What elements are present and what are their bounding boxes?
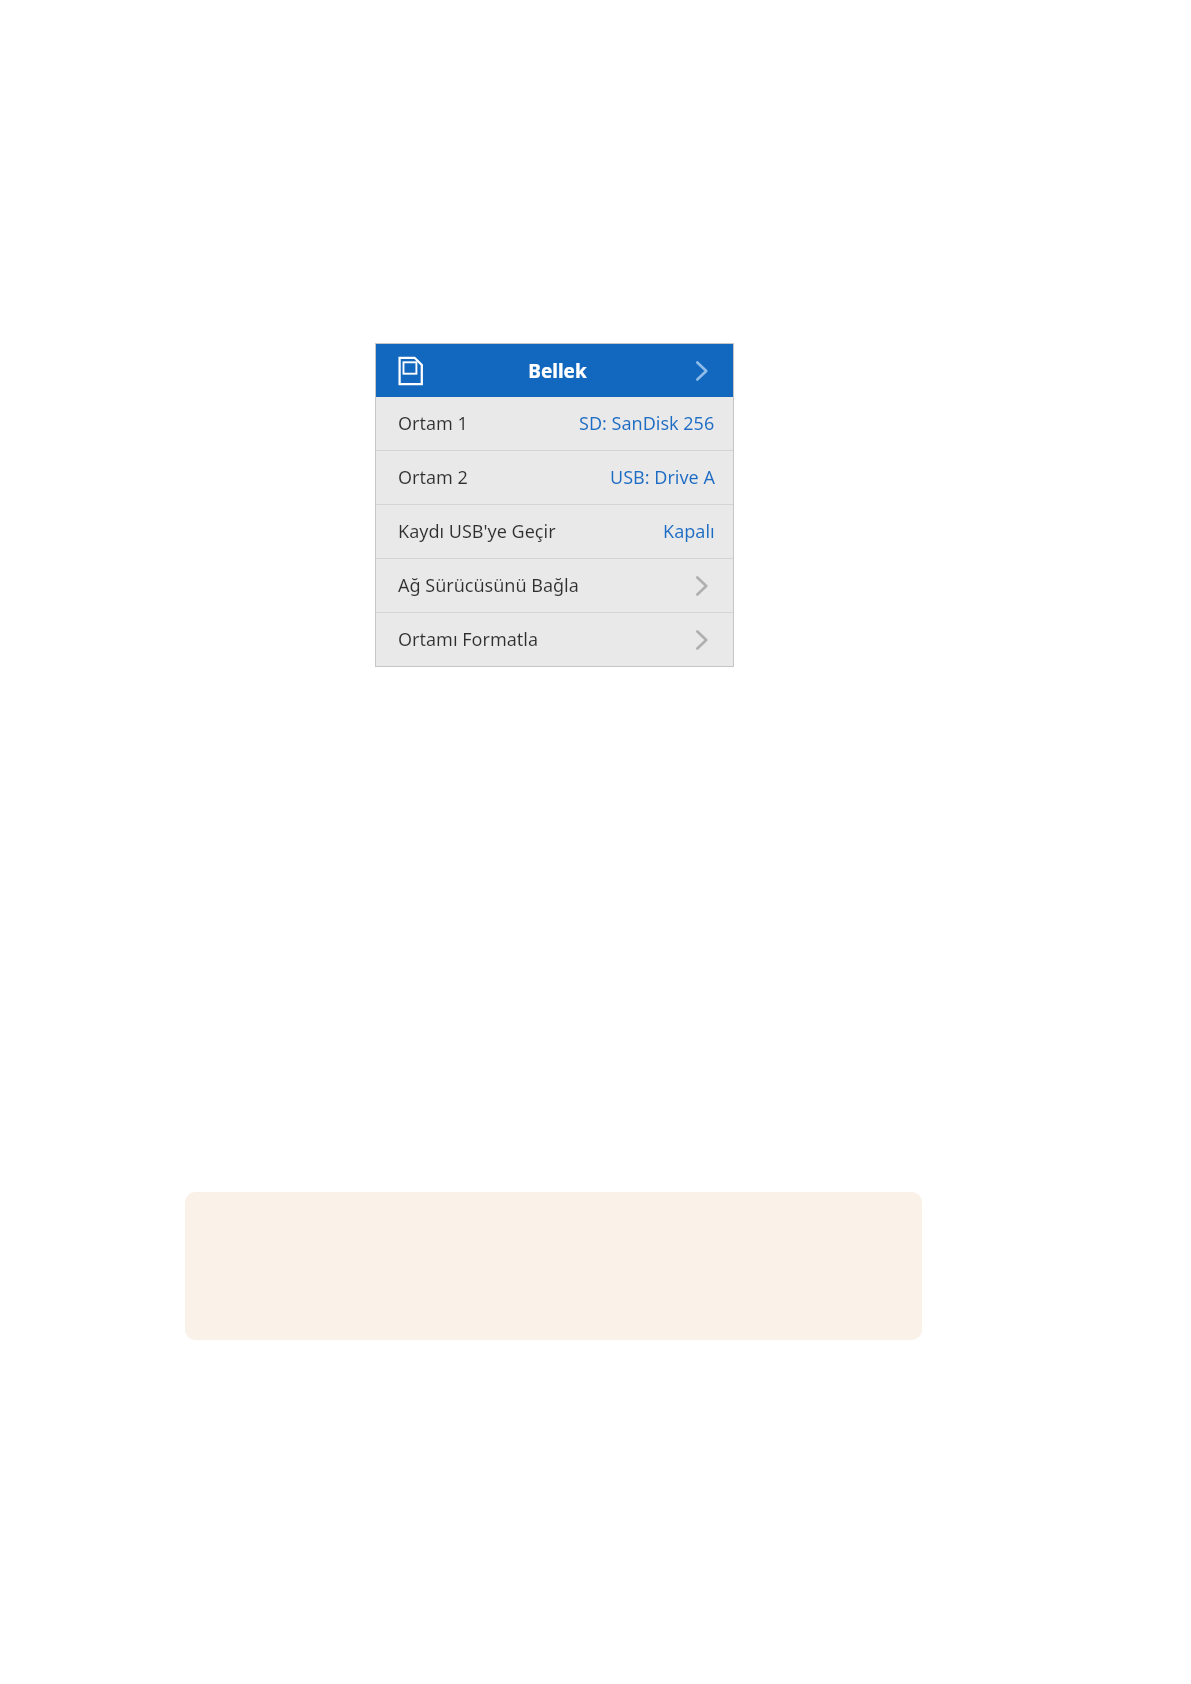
button[interactable]: Ortam 1 [376,397,733,450]
staticText: SD: SanDisk 256 [579,411,715,436]
staticText: Ağ Sürücüsünü Bağla [398,573,579,598]
staticText: Ortamı Formatla [398,627,539,652]
staticText: Kaydı USB'ye Geçir [398,519,556,544]
staticText: USB: Drive A [610,465,715,490]
button[interactable]: Ağ Sürücüsünü Bağla [376,559,733,612]
staticText: Bellek [426,358,689,384]
button[interactable]: Ortam 2 [376,451,733,504]
button[interactable]: Kaydı USB'ye Geçir [376,505,733,558]
staticText: Ortam 2 [398,465,468,490]
staticText: Kapalı [663,519,715,544]
button[interactable]: Ortamı Formatla [376,613,733,666]
other: Storage [396,356,426,386]
staticText: Ortam 1 [398,411,468,436]
button[interactable]: Storage [376,344,733,397]
